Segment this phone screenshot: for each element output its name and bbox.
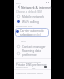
button[interactable]: Mobile network: [14, 14, 51, 19]
staticText: SIM: [21, 39, 26, 42]
staticText: Advanced connection: [16, 60, 42, 63]
staticText: Network & internet: [21, 5, 52, 9]
button[interactable]: Wi-Fi calling: [14, 19, 51, 24]
button[interactable]: Contact manager: [14, 44, 51, 49]
staticText: 9:41: [16, 1, 21, 4]
staticText: Mobile network: [22, 15, 45, 19]
staticText: Network settings reset: [16, 71, 43, 74]
button[interactable]: Carrier automatic selection: [15, 28, 49, 37]
staticText: Choose a default SIM: [16, 10, 42, 14]
staticText: Roaming data preference: [22, 49, 51, 57]
staticText: Wi-Fi calling: [22, 20, 39, 24]
button[interactable]: More options: [44, 66, 47, 68]
button[interactable]: Back: [17, 5, 21, 9]
staticText: Private DNS preference: [16, 63, 47, 67]
staticText: Contact manager: [22, 45, 46, 49]
button[interactable]: Roaming data preference: [14, 49, 51, 57]
staticText: off: [32, 66, 36, 69]
staticText: recommended: [23, 33, 41, 37]
staticText: Preferred SIM: [16, 24, 33, 27]
staticText: automatic: [16, 65, 28, 68]
staticText: Carrier automatic selection: [20, 29, 49, 37]
